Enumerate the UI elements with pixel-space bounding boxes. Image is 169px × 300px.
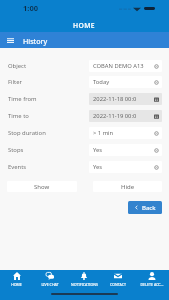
button[interactable]: LIVE CHAT: [33, 270, 67, 289]
button[interactable]: Back: [128, 201, 162, 214]
staticText: 2022-11-18 00:0: [93, 95, 137, 103]
button[interactable]: Time to: [0, 107, 169, 124]
staticText: COBAN DEMO A13: [93, 62, 144, 70]
button[interactable]: Filter: [0, 74, 169, 90]
staticText: NOTIFICATIONS: [71, 282, 98, 287]
button[interactable]: Time from: [0, 90, 169, 107]
staticText: HOME: [73, 21, 96, 30]
staticText: > 1 min: [93, 129, 114, 137]
button[interactable]: Events: [0, 158, 169, 175]
staticText: LIVE CHAT: [41, 282, 59, 287]
staticText: Today: [93, 78, 110, 86]
staticText: Events: [8, 163, 89, 171]
button[interactable]: Stops: [0, 141, 169, 158]
staticText: Hide: [121, 183, 135, 191]
button[interactable]: CONTACT: [101, 270, 135, 289]
staticText: Stops: [8, 146, 89, 154]
staticText: DELETE ACC...: [140, 282, 164, 287]
button[interactable]: Stop duration: [0, 124, 169, 141]
button[interactable]: Hide: [93, 181, 162, 192]
staticText: Show: [34, 183, 50, 191]
staticText: Yes: [93, 163, 103, 171]
staticText: Yes: [93, 146, 103, 154]
staticText: Time from: [8, 95, 89, 103]
staticText: History: [23, 36, 48, 46]
staticText: Filter: [8, 78, 89, 86]
button[interactable]: NOTIFICATIONS: [67, 270, 101, 289]
other: Menu: [7, 37, 14, 44]
staticText: Stop duration: [8, 129, 89, 137]
staticText: Time to: [8, 112, 89, 120]
button[interactable]: Show: [7, 181, 77, 192]
staticText: HOME: [11, 282, 22, 287]
staticText: 1:00: [23, 3, 38, 13]
button[interactable]: HOME: [0, 270, 33, 289]
staticText: CONTACT: [110, 282, 126, 287]
button[interactable]: DELETE ACC...: [135, 270, 169, 289]
staticText: Back: [142, 204, 156, 212]
button[interactable]: Object: [0, 57, 169, 74]
staticText: 2022-11-19 00:0: [93, 112, 137, 120]
button[interactable]: Menu: [0, 32, 169, 48]
staticText: Object: [8, 62, 89, 70]
